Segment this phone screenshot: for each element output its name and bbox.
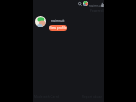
button[interactable]: swimsu — [89, 3, 104, 7]
staticText: swimsu — [89, 3, 101, 7]
staticText: swimsuit — [51, 19, 65, 23]
staticText: Powered by — [90, 9, 104, 13]
staticText: Report abuse — [82, 95, 103, 99]
button[interactable]: Search — [77, 1, 83, 7]
staticText: View profile — [49, 26, 67, 30]
button[interactable]: swimsuit — [51, 19, 65, 23]
button[interactable]: Made with Carrd — [34, 95, 59, 99]
staticText: itlife — [101, 3, 104, 7]
button[interactable]: Report abuse — [82, 95, 103, 99]
button[interactable]: More options — [100, 2, 104, 7]
button[interactable]: View profile — [49, 25, 67, 31]
staticText: Made with Carrd — [34, 95, 59, 99]
button[interactable]: Profile picture — [35, 16, 46, 27]
